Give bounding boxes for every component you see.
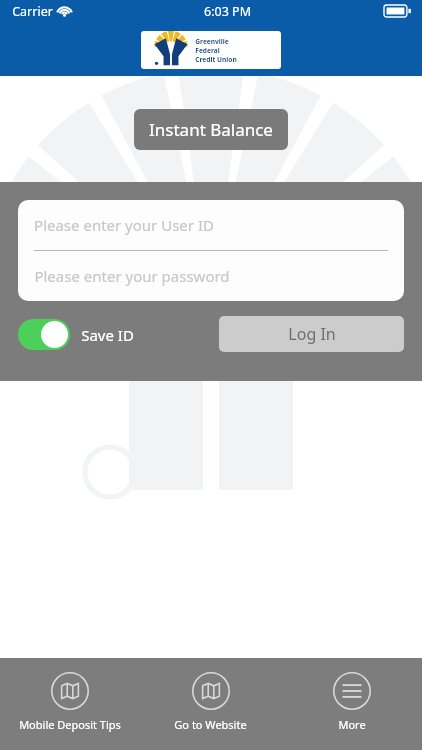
button[interactable]: Go to Website	[140, 658, 281, 732]
button[interactable]: Instant Balance	[134, 109, 288, 150]
button[interactable]: Greenville Federal Credit Union	[141, 31, 281, 69]
staticText: Go to Website	[174, 717, 247, 732]
staticText: Federal	[195, 46, 220, 55]
staticText: Please enter your User ID	[34, 215, 214, 235]
staticText: Credit Union	[195, 55, 237, 64]
staticText: Mobile Deposit Tips	[19, 717, 121, 732]
button[interactable]: More	[281, 658, 422, 732]
button[interactable]: Please enter your password	[18, 251, 404, 301]
staticText: Save ID	[81, 325, 134, 345]
button[interactable]: Log In	[219, 316, 404, 352]
staticText: Carrier	[12, 3, 53, 20]
button[interactable]: Save ID	[18, 319, 134, 350]
button[interactable]: Please enter your User ID	[18, 200, 404, 250]
staticText: Instant Balance	[149, 118, 273, 141]
staticText: More	[338, 717, 366, 732]
staticText: Greenville	[195, 37, 229, 46]
staticText: Log In	[288, 323, 336, 345]
staticText: 6:03 PM	[204, 3, 251, 20]
staticText: Please enter your password	[34, 266, 230, 286]
button[interactable]: Mobile Deposit Tips	[0, 658, 140, 732]
